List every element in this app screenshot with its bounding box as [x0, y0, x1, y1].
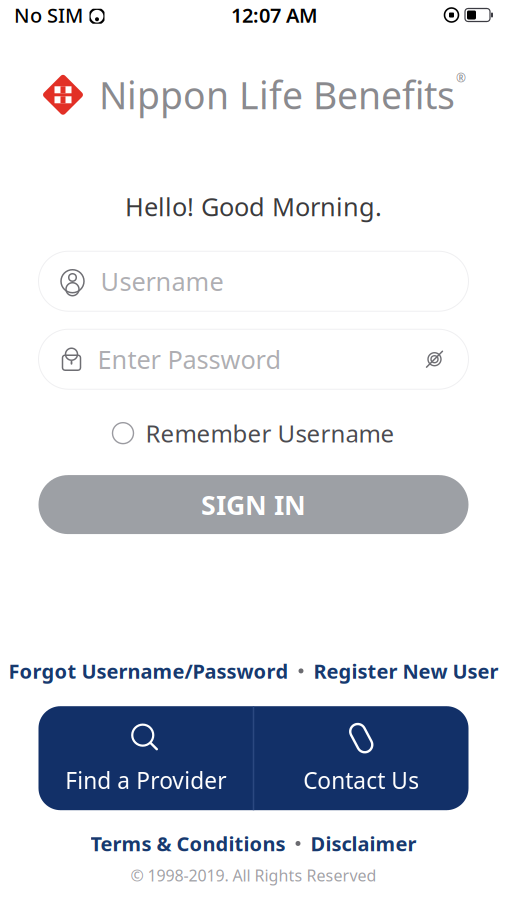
button[interactable]: Terms & Conditions [90, 830, 285, 857]
button[interactable]: Contact Us [254, 706, 468, 810]
staticText: Hello! Good Morning. [125, 190, 382, 223]
button[interactable]: Enter Password [38, 329, 468, 389]
staticText: Forgot Username/Password [8, 658, 288, 684]
staticText: No SIM [14, 2, 83, 28]
staticText: 12:07 AM [231, 2, 318, 28]
staticText: ® [456, 70, 466, 86]
staticText: Enter Password [97, 342, 281, 376]
button[interactable]: Disclaimer [310, 830, 416, 857]
staticText: Remember Username [145, 417, 394, 449]
staticText: Terms & Conditions [90, 830, 285, 857]
staticText: Register New User [313, 658, 498, 684]
staticText: Find a Provider [65, 765, 226, 795]
button[interactable]: Register New User [313, 658, 498, 684]
button[interactable]: Remember Username [112, 417, 394, 449]
button[interactable]: Forgot Username/Password [8, 658, 288, 684]
button[interactable]: Find a Provider [39, 706, 253, 810]
staticText: Disclaimer [310, 830, 416, 857]
button[interactable]: SIGN IN [38, 475, 468, 534]
staticText: Nippon Life Benefits [99, 70, 455, 120]
staticText: © 1998-2019. All Rights Reserved [130, 865, 376, 886]
staticText: Username [100, 264, 223, 298]
button[interactable]: Username [38, 251, 468, 311]
staticText: Contact Us [303, 765, 419, 795]
staticText: SIGN IN [201, 487, 306, 522]
